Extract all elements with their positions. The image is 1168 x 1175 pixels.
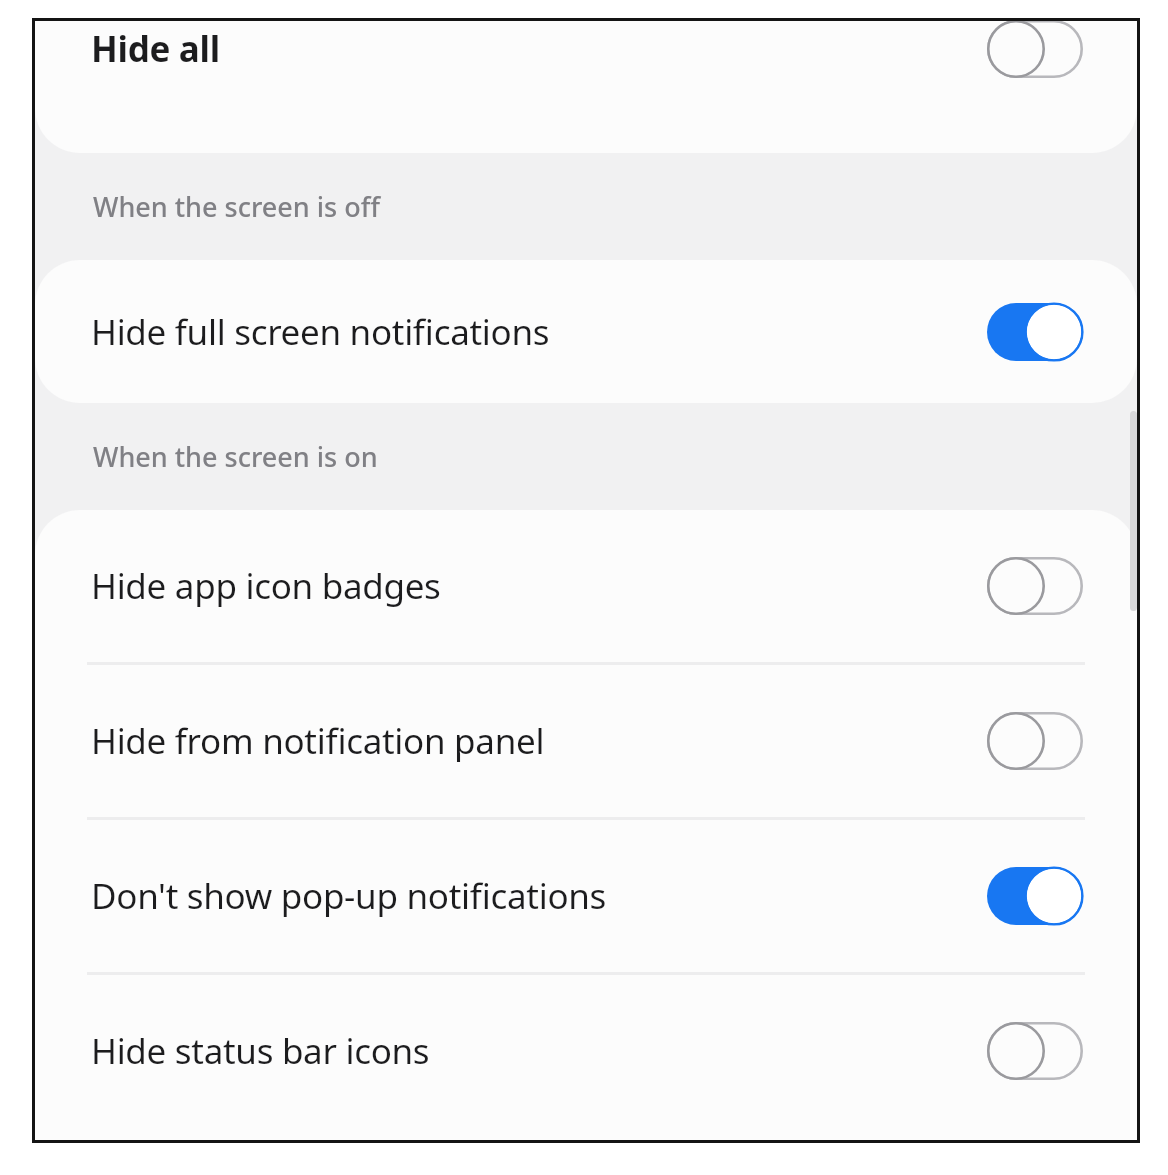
staticText: Hide from notification panel <box>91 717 983 765</box>
button[interactable]: Hide app icon badges <box>35 510 1137 662</box>
staticText: Don't show pop-up notifications <box>91 872 983 920</box>
button[interactable]: Hide from notification panel <box>983 709 1087 773</box>
button[interactable]: Hide full screen notifications <box>35 260 1137 403</box>
button[interactable]: Hide status bar icons <box>983 1019 1087 1083</box>
button[interactable]: Hide full screen notifications <box>983 300 1087 364</box>
staticText: When the screen is on <box>93 438 378 475</box>
button[interactable]: Hide all <box>983 21 1087 81</box>
staticText: When the screen is off <box>93 188 380 225</box>
button[interactable]: Hide from notification panel <box>35 665 1137 817</box>
button[interactable]: Hide status bar icons <box>35 975 1137 1127</box>
staticText: Hide app icon badges <box>91 562 983 610</box>
staticText: Hide full screen notifications <box>91 308 983 356</box>
button[interactable]: Don't show pop-up notifications <box>983 864 1087 928</box>
staticText: Hide status bar icons <box>91 1027 983 1075</box>
button[interactable]: Hide all <box>35 21 1137 115</box>
button[interactable]: Hide app icon badges <box>983 554 1087 618</box>
staticText: Hide all <box>91 25 983 73</box>
button[interactable]: Don't show pop-up notifications <box>35 820 1137 972</box>
